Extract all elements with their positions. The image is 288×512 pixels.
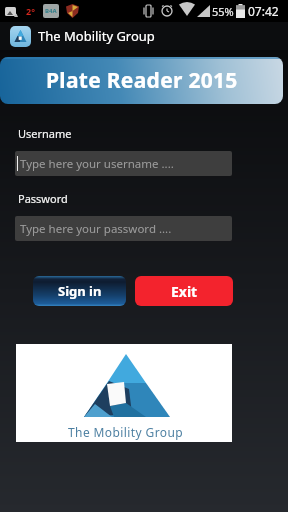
staticText: Plate Reader 2015 <box>46 66 238 95</box>
staticText: 55% <box>212 4 234 19</box>
button[interactable]: Type here your password .... <box>15 216 232 241</box>
button[interactable]: Sign in <box>33 276 126 306</box>
button[interactable]: Type here your username .... <box>15 151 232 176</box>
staticText: The Mobility Group <box>38 27 155 45</box>
staticText: B4A <box>45 7 57 15</box>
button[interactable]: Plate Reader 2015 <box>0 57 283 104</box>
button[interactable]: The Mobility Group <box>0 22 288 50</box>
staticText: Username <box>18 126 72 141</box>
staticText: Exit <box>171 282 198 301</box>
staticText: 2° <box>26 5 35 17</box>
staticText: 07:42 <box>248 3 279 19</box>
button[interactable]: Exit <box>135 276 233 306</box>
staticText: The Mobility Group <box>68 424 184 440</box>
staticText: Sign in <box>58 282 102 300</box>
staticText: Type here your password .... <box>20 221 172 237</box>
staticText: Type here your username .... <box>20 156 174 172</box>
staticText: Password <box>18 191 68 206</box>
